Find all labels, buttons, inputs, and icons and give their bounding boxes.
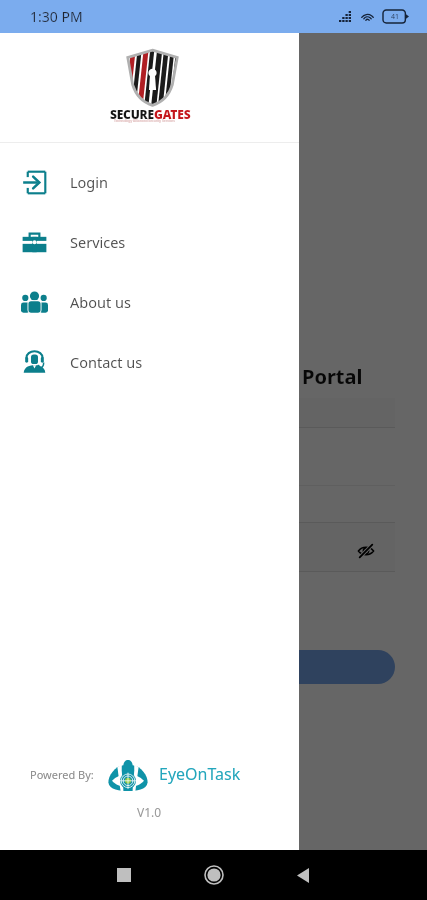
staticText: Powered By: xyxy=(30,767,94,782)
staticText: Login xyxy=(70,172,108,192)
button[interactable]: About us xyxy=(0,272,299,332)
staticText: V1.0 xyxy=(137,804,162,820)
staticText: Portal xyxy=(302,363,363,390)
staticText: EyeOnTask xyxy=(159,763,241,785)
staticText: Contact us xyxy=(70,352,143,372)
staticText: 1:30 PM xyxy=(30,7,83,26)
staticText: Technology Allianced Security Services xyxy=(114,118,175,123)
staticText: 41 xyxy=(391,12,400,22)
staticText: Services xyxy=(70,232,126,252)
button[interactable]: Home xyxy=(191,852,237,898)
staticText: GATES xyxy=(154,106,191,122)
button[interactable]: Services xyxy=(0,212,299,272)
button[interactable]: LOGIN xyxy=(31,650,395,684)
button[interactable]: Recent apps xyxy=(101,852,147,898)
staticText: SECURE xyxy=(110,106,154,122)
button[interactable]: Back xyxy=(280,852,326,898)
button[interactable]: Login xyxy=(0,152,299,212)
button[interactable]: Toggle password visibility xyxy=(345,530,387,572)
button[interactable]: Contact us xyxy=(0,332,299,392)
staticText: About us xyxy=(70,292,131,312)
